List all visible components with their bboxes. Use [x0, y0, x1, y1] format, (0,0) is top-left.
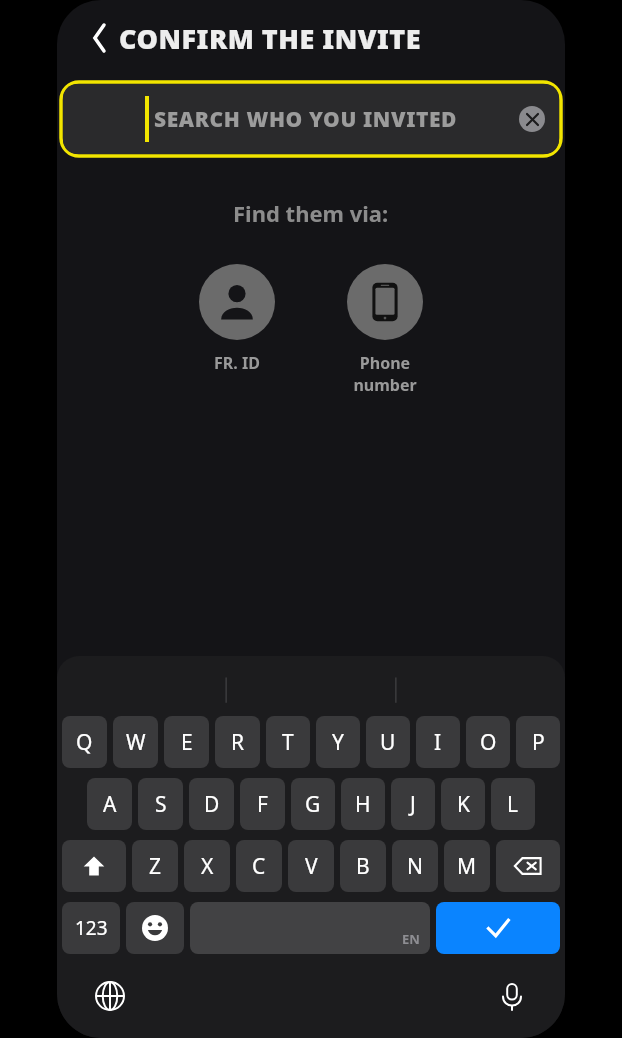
staticText: CONFIRM THE INVITE: [119, 20, 422, 57]
button[interactable]: Emoji: [126, 902, 184, 954]
staticText: Q: [76, 728, 93, 757]
button[interactable]: E: [164, 716, 209, 768]
button[interactable]: D: [189, 778, 234, 830]
staticText: M: [457, 852, 477, 881]
button[interactable]: V: [288, 840, 334, 892]
staticText: Find them via:: [233, 198, 389, 228]
staticText: D: [204, 790, 220, 819]
button[interactable]: G: [291, 778, 335, 830]
button[interactable]: S: [138, 778, 183, 830]
button[interactable]: N: [392, 840, 438, 892]
button[interactable]: FR. ID: [189, 264, 285, 374]
staticText: S: [155, 790, 167, 819]
staticText: W: [126, 728, 146, 757]
button[interactable]: Q: [62, 716, 107, 768]
button[interactable]: Y: [316, 716, 360, 768]
staticText: H: [355, 790, 371, 819]
button[interactable]: Enter: [436, 902, 560, 954]
button[interactable]: K: [441, 778, 485, 830]
staticText: T: [282, 728, 294, 757]
button[interactable]: T: [266, 716, 310, 768]
staticText: SEARCH WHO YOU INVITED: [154, 105, 458, 134]
button[interactable]: O: [466, 716, 510, 768]
button[interactable]: Shift: [62, 840, 126, 892]
staticText: Y: [332, 728, 344, 757]
button[interactable]: EN: [190, 902, 430, 954]
staticText: EN: [402, 930, 420, 948]
button[interactable]: A: [87, 778, 132, 830]
staticText: O: [480, 728, 497, 757]
staticText: N: [407, 852, 423, 881]
staticText: E: [181, 728, 193, 757]
button[interactable]: C: [236, 840, 282, 892]
button[interactable]: J: [391, 778, 435, 830]
staticText: Z: [149, 852, 162, 881]
staticText: P: [532, 728, 545, 757]
staticText: Phone number: [353, 352, 417, 396]
button[interactable]: Phone number: [337, 264, 433, 396]
button[interactable]: X: [184, 840, 230, 892]
staticText: U: [380, 728, 396, 757]
staticText: V: [305, 852, 318, 881]
button[interactable]: B: [340, 840, 386, 892]
button[interactable]: P: [516, 716, 560, 768]
staticText: G: [305, 790, 321, 819]
staticText: F: [257, 790, 268, 819]
button[interactable]: R: [215, 716, 260, 768]
button[interactable]: 123: [62, 902, 120, 954]
staticText: B: [356, 852, 370, 881]
button[interactable]: M: [444, 840, 490, 892]
button[interactable]: Clear: [519, 106, 545, 132]
button[interactable]: Backspace: [496, 840, 560, 892]
staticText: I: [434, 728, 442, 757]
staticText: C: [252, 852, 266, 881]
staticText: X: [201, 852, 214, 881]
staticText: K: [457, 790, 470, 819]
button[interactable]: Z: [132, 840, 178, 892]
staticText: 123: [75, 915, 108, 941]
button[interactable]: Change language: [89, 975, 131, 1017]
button[interactable]: F: [240, 778, 285, 830]
staticText: A: [103, 790, 117, 819]
button[interactable]: Back: [87, 18, 113, 58]
staticText: FR. ID: [214, 352, 260, 374]
staticText: L: [507, 790, 519, 819]
staticText: J: [410, 790, 416, 819]
button[interactable]: U: [366, 716, 410, 768]
button[interactable]: I: [416, 716, 460, 768]
button[interactable]: L: [491, 778, 535, 830]
staticText: R: [231, 728, 245, 757]
button[interactable]: SEARCH WHO YOU INVITED: [63, 84, 559, 154]
button[interactable]: W: [113, 716, 158, 768]
button[interactable]: H: [341, 778, 385, 830]
button[interactable]: Voice input: [491, 975, 533, 1017]
